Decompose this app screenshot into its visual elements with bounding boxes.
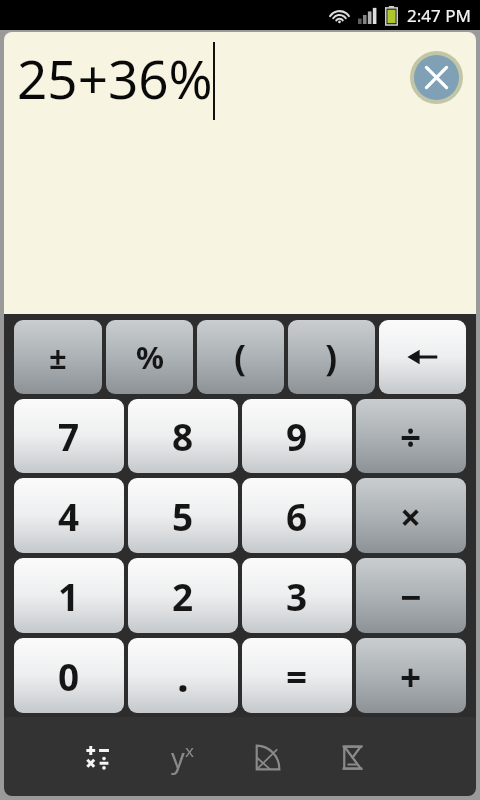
button[interactable]: Trigonometry [240,730,294,784]
button[interactable]: ÷ [356,399,466,473]
staticText: 3 [286,571,308,621]
button[interactable]: − [356,558,466,633]
button[interactable]: 0 [14,638,124,713]
staticText: 1 [58,571,80,621]
button[interactable]: 8 [128,399,238,473]
staticText: 8 [172,411,194,461]
staticText: . [177,647,189,704]
button[interactable]: ± [14,320,102,394]
staticText: % [136,336,164,378]
staticText: 5 [172,491,194,541]
staticText: × [400,491,422,541]
staticText: 2 [172,571,194,621]
button[interactable]: Clear [410,51,463,104]
button[interactable]: 1 [14,558,124,633]
button[interactable]: × [356,478,466,553]
button[interactable]: % [106,320,193,394]
staticText: x [185,739,194,762]
staticText: 9 [286,411,308,461]
button[interactable]: 4 [14,478,124,553]
button[interactable]: Power [155,730,209,784]
staticText: 2:47 PM [407,4,471,27]
staticText: 7 [58,411,80,461]
button[interactable]: ) [288,320,375,394]
button[interactable]: + [356,638,466,713]
staticText: = [286,651,308,701]
staticText: ÷ [400,411,422,461]
button[interactable]: 7 [14,399,124,473]
staticText: ( [234,333,247,382]
staticText: + [400,651,422,701]
button[interactable]: 3 [242,558,352,633]
staticText: 0 [58,651,80,701]
staticText: 4 [58,491,80,541]
staticText: ± [49,336,67,378]
button[interactable]: History [325,730,379,784]
staticText: ) [325,333,338,382]
button[interactable]: . [128,638,238,713]
staticText: − [400,571,422,621]
button[interactable]: Backspace [379,320,466,394]
button[interactable]: ( [197,320,284,394]
button[interactable]: Basic [70,730,124,784]
button[interactable]: 6 [242,478,352,553]
staticText: 6 [286,491,308,541]
staticText: y [171,739,185,776]
staticText: 25+36% [17,42,213,114]
button[interactable]: 9 [242,399,352,473]
button[interactable]: 2 [128,558,238,633]
button[interactable]: 5 [128,478,238,553]
button[interactable]: = [242,638,352,713]
